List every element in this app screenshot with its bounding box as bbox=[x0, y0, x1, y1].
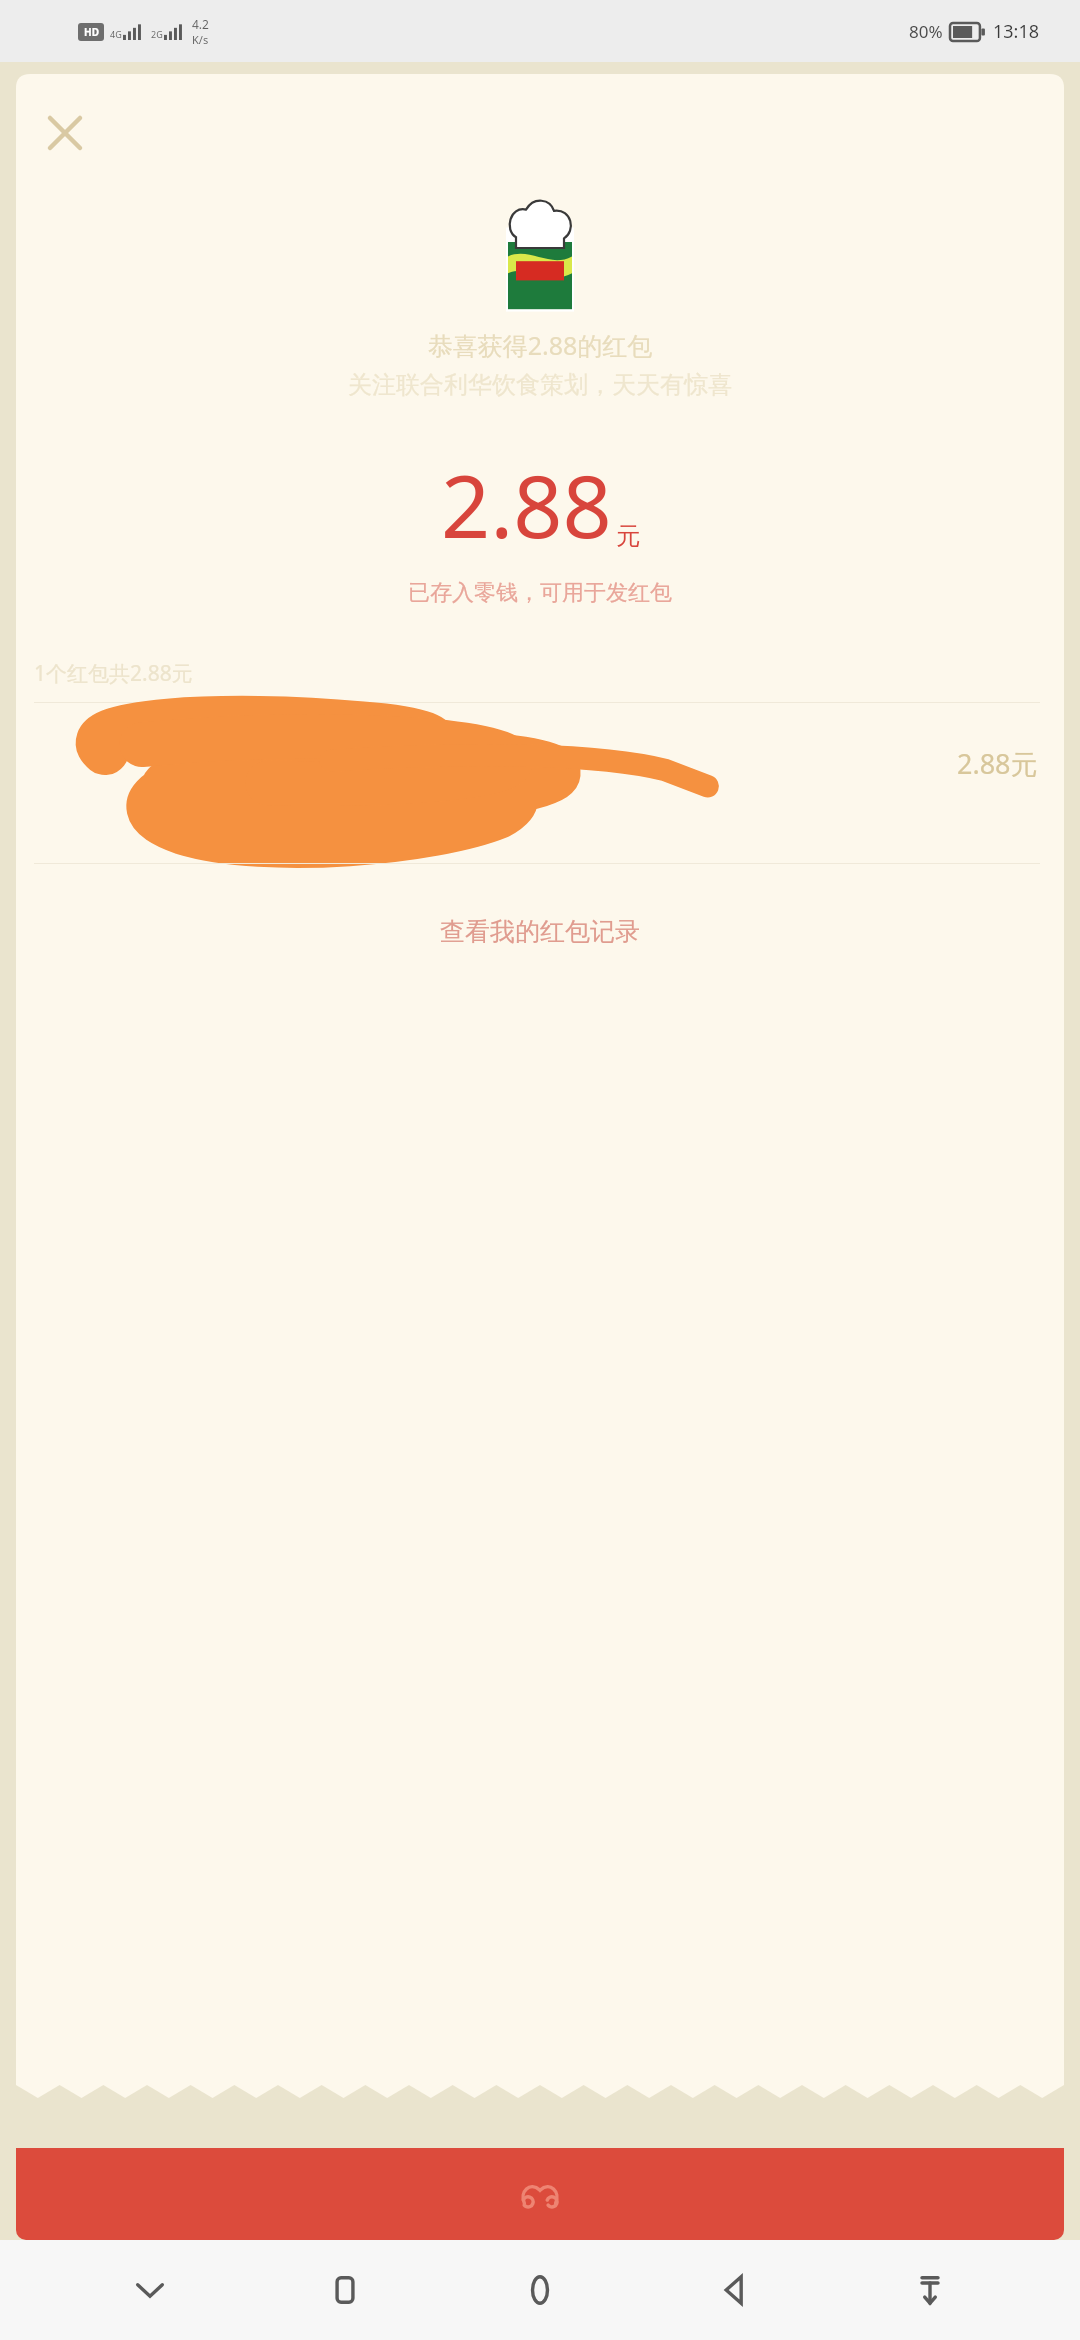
staticText: 4G bbox=[110, 28, 122, 40]
staticText: 2G bbox=[151, 28, 163, 40]
staticText: 2.88元 bbox=[957, 745, 1038, 782]
staticText: K/s bbox=[192, 32, 209, 47]
button[interactable]: 查看我的红包记录 bbox=[420, 908, 660, 955]
staticText: 关注联合利华饮食策划，天天有惊喜 bbox=[16, 370, 1064, 400]
button[interactable]: Back bbox=[690, 2245, 780, 2335]
staticText: 查看我的红包记录 bbox=[440, 916, 640, 947]
button[interactable]: Hide navigation bar bbox=[885, 2245, 975, 2335]
staticText: 13:18 bbox=[993, 19, 1040, 44]
staticText: 元 bbox=[616, 521, 640, 551]
staticText: 2.88 bbox=[441, 446, 612, 563]
staticText: 已存入零钱，可用于发红包 bbox=[16, 579, 1064, 607]
button[interactable]: Close bbox=[34, 102, 96, 164]
staticText: 恭喜获得2.88的红包 bbox=[16, 328, 1064, 362]
button[interactable]: Home bbox=[495, 2245, 585, 2335]
staticText: HD bbox=[84, 25, 99, 39]
button[interactable]: Recents bbox=[300, 2245, 390, 2335]
staticText: 80% bbox=[909, 20, 943, 43]
staticText: 4.2 bbox=[192, 16, 209, 32]
staticText: 1个红包共2.88元 bbox=[34, 659, 193, 688]
button[interactable]: Hide keyboard bbox=[105, 2245, 195, 2335]
